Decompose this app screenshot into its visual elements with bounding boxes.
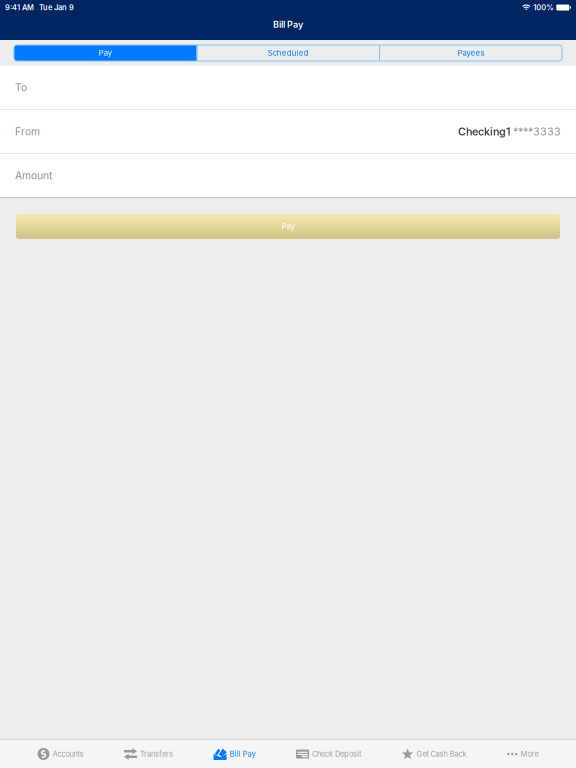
- staticText: Checking1: [458, 125, 510, 138]
- button[interactable]: Get Cash Back: [399, 740, 470, 768]
- staticText: Check Deposit: [312, 749, 361, 758]
- button[interactable]: Pay: [16, 214, 560, 239]
- staticText: Tue Jan 9: [39, 3, 74, 12]
- button[interactable]: Bill Pay: [210, 740, 258, 768]
- staticText: More: [520, 749, 538, 758]
- button[interactable]: Scheduled: [198, 45, 379, 61]
- staticText: 9:41 AM: [5, 3, 34, 12]
- staticText: 100%: [533, 3, 553, 12]
- button[interactable]: Transfers: [121, 740, 176, 768]
- button[interactable]: Payees: [380, 45, 562, 61]
- staticText: Bill Pay: [229, 749, 255, 758]
- staticText: Scheduled: [268, 48, 309, 58]
- button[interactable]: More: [504, 740, 541, 768]
- staticText: Get Cash Back: [417, 749, 467, 758]
- staticText: Amount: [15, 169, 52, 182]
- button[interactable]: Amount: [0, 154, 576, 197]
- staticText: Pay: [281, 222, 294, 231]
- staticText: Accounts: [52, 749, 83, 758]
- staticText: ****3333: [510, 125, 561, 138]
- staticText: From: [15, 125, 40, 138]
- staticText: Bill Pay: [273, 19, 303, 30]
- staticText: Pay: [99, 48, 112, 58]
- button[interactable]: Accounts: [34, 740, 86, 768]
- staticText: Payees: [457, 48, 484, 58]
- staticText: To: [15, 81, 27, 94]
- button[interactable]: Pay: [14, 45, 197, 61]
- button[interactable]: From: [0, 110, 576, 153]
- button[interactable]: Check Deposit: [293, 740, 364, 768]
- staticText: Transfers: [140, 749, 173, 758]
